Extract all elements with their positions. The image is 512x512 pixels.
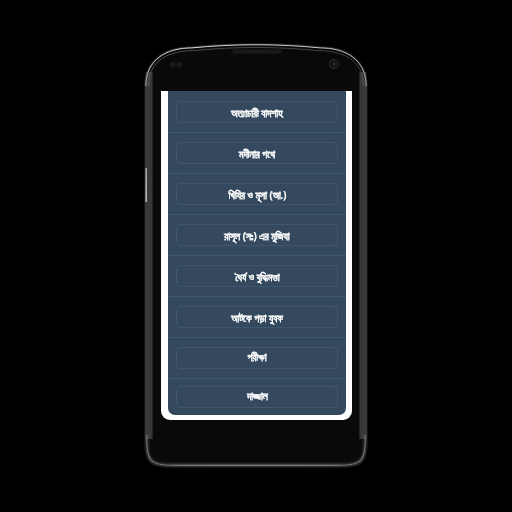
button[interactable]: মদীনার পথে — [168, 132, 346, 173]
button[interactable]: পরীক্ষা — [168, 337, 346, 378]
button[interactable]: অত্যাচারী বাদশাহ — [168, 91, 346, 132]
button[interactable]: রাসূল (সঃ) এর মুজিযা — [168, 214, 346, 255]
button[interactable]: আটকে পড়া যুবক — [168, 296, 346, 337]
staticText: ধৈর্য ও বুদ্ধিমত্তা — [235, 270, 280, 283]
button[interactable]: ধৈর্য ও বুদ্ধিমত্তা — [168, 255, 346, 296]
staticText: মদীনার পথে — [239, 147, 275, 160]
button[interactable]: খিযির ও মূসা (আ.) — [168, 173, 346, 214]
staticText: পরীক্ষা — [247, 353, 267, 363]
staticText: খিযির ও মূসা (আ.) — [228, 188, 287, 201]
staticText: রাসূল (সঃ) এর মুজিযা — [224, 229, 290, 242]
staticText: আটকে পড়া যুবক — [231, 311, 283, 324]
staticText: দাজ্জাল — [247, 392, 268, 402]
staticText: অত্যাচারী বাদশাহ — [231, 106, 283, 119]
button[interactable]: দাজ্জাল — [168, 378, 346, 415]
